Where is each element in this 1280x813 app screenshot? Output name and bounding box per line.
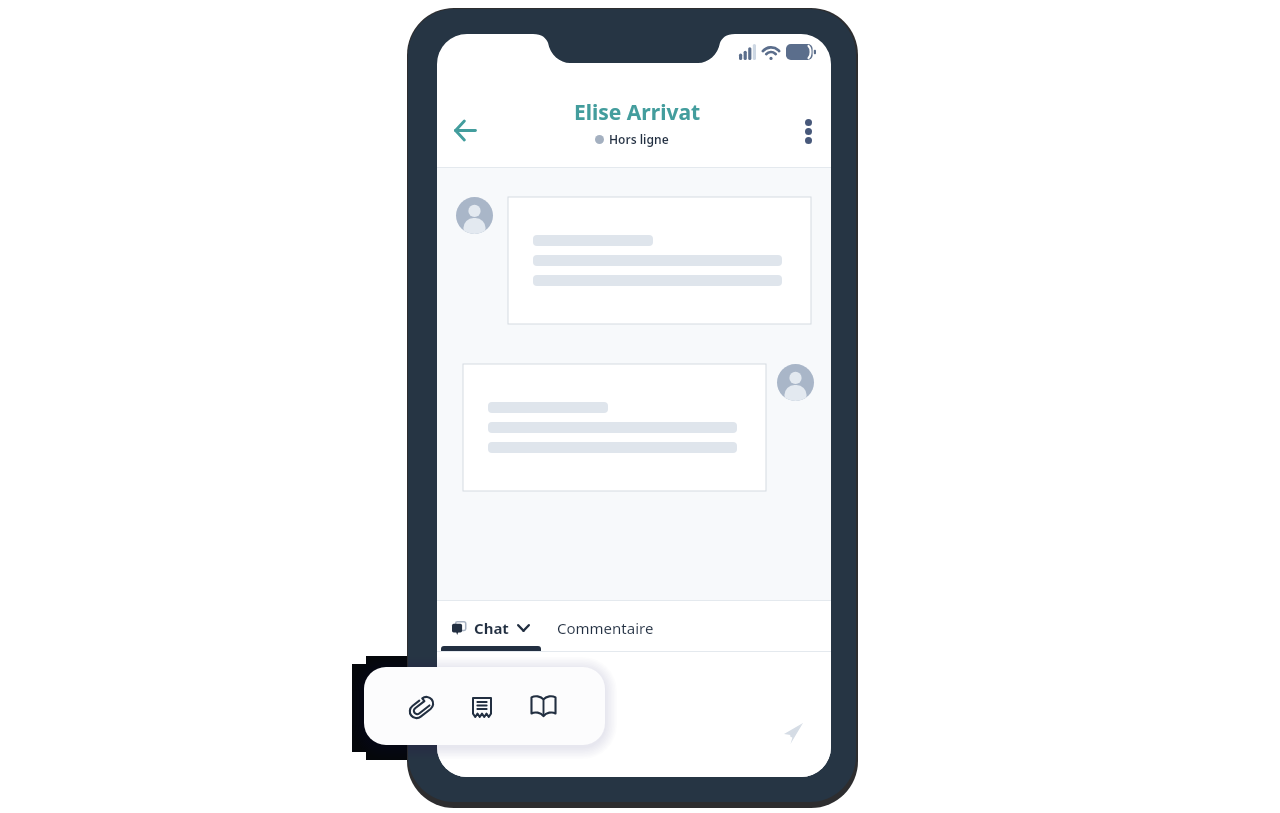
- staticText: Elise Arrivat: [574, 98, 701, 127]
- button[interactable]: Send message: [775, 715, 811, 751]
- button[interactable]: Back: [439, 106, 491, 154]
- button[interactable]: More options: [792, 106, 824, 156]
- button[interactable]: Attach file: [401, 687, 441, 727]
- staticText: Hors ligne: [609, 131, 669, 147]
- staticText: Chat: [474, 618, 509, 638]
- staticText: Commentaire: [557, 618, 654, 638]
- button[interactable]: Chat: [441, 601, 541, 652]
- button[interactable]: [508, 197, 811, 324]
- button[interactable]: Commentaire: [541, 601, 691, 652]
- button[interactable]: Attach file: [364, 667, 605, 745]
- button[interactable]: Invoice: [462, 686, 502, 726]
- button[interactable]: [463, 364, 766, 491]
- button[interactable]: Knowledge base: [523, 686, 563, 726]
